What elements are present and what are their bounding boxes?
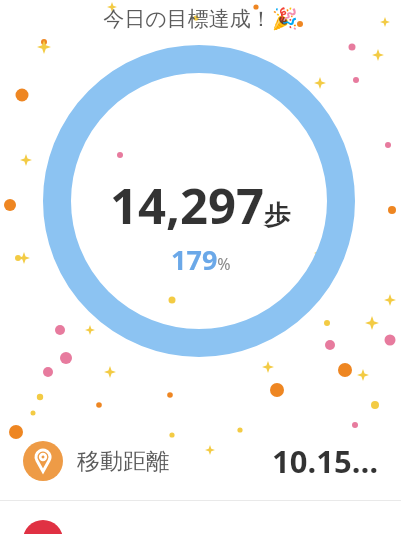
staticText: 10.15… xyxy=(272,440,379,482)
staticText: 移動距離 xyxy=(77,447,169,476)
other: Calories burned xyxy=(23,520,63,534)
staticText: 14,297歩 xyxy=(110,172,291,239)
button[interactable]: 移動距離 xyxy=(0,422,401,500)
button[interactable]: Calories burned xyxy=(0,501,401,534)
staticText: 今日の目標達成！🎉 xyxy=(0,6,401,32)
staticText: 179% xyxy=(171,241,231,278)
